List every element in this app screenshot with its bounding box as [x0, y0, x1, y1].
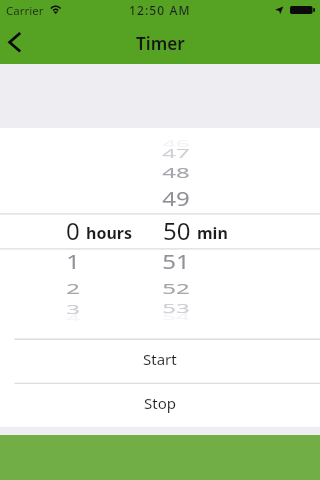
staticText: 50 [163, 214, 191, 247]
staticText: 4 [66, 312, 80, 323]
staticText: 53 [162, 300, 190, 317]
staticText: Carrier [6, 3, 44, 19]
button[interactable]: Back [2, 26, 34, 58]
staticText: 52 [162, 279, 190, 298]
staticText: Timer [136, 32, 185, 55]
staticText: 51 [162, 248, 190, 275]
staticText: 46 [162, 138, 190, 149]
staticText: 49 [162, 185, 190, 212]
staticText: 54 [162, 311, 190, 322]
staticText: 48 [162, 163, 190, 182]
staticText: 0 [66, 214, 80, 247]
button[interactable]: Start [0, 339, 320, 383]
staticText: 47 [162, 145, 190, 162]
staticText: hours [86, 222, 132, 244]
button[interactable]: 0 [0, 214, 320, 249]
staticText: Stop [144, 393, 176, 413]
staticText: 1 [66, 248, 80, 275]
staticText: Start [143, 349, 177, 369]
staticText: 2 [66, 279, 80, 298]
staticText: 12:50 AM [129, 2, 191, 18]
staticText: min [197, 222, 228, 244]
button[interactable]: Stop [0, 383, 320, 427]
staticText: 3 [66, 301, 80, 318]
